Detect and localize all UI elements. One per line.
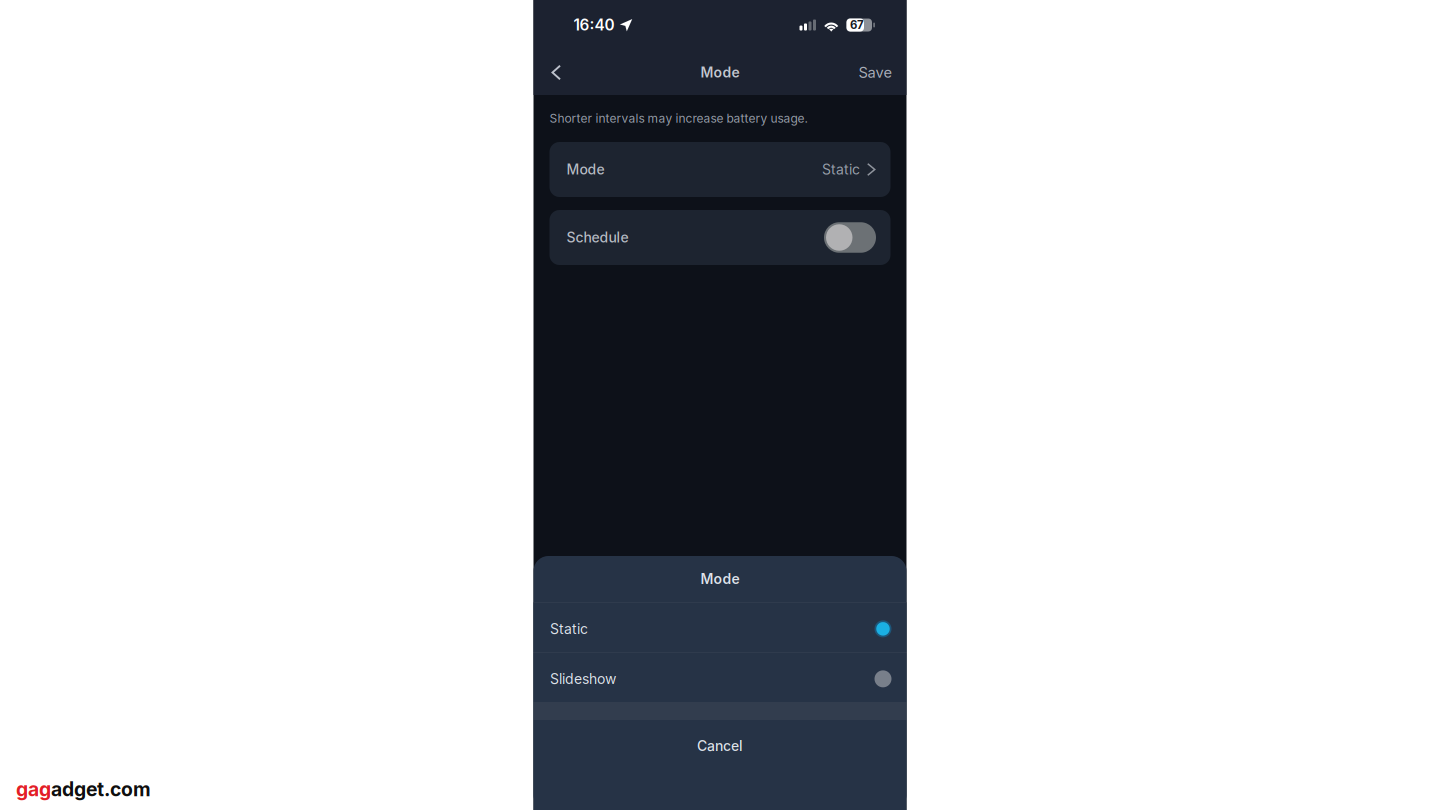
staticText: Mode xyxy=(566,161,604,178)
button[interactable]: Cancel xyxy=(533,720,906,810)
button[interactable]: Save xyxy=(840,50,906,95)
button[interactable]: Slideshow xyxy=(533,653,906,702)
staticText: Static xyxy=(822,161,860,178)
staticText: Mode xyxy=(700,64,739,81)
button[interactable]: Back xyxy=(533,50,577,95)
staticText: Shorter intervals may increase battery u… xyxy=(549,111,807,126)
staticText: Schedule xyxy=(566,229,628,246)
button[interactable]: Mode xyxy=(549,142,890,197)
staticText: 67 xyxy=(850,18,864,32)
staticText: Mode xyxy=(700,570,739,587)
staticText: Cancel xyxy=(697,737,743,754)
staticText: Slideshow xyxy=(550,670,616,687)
staticText: adget.com xyxy=(51,778,151,801)
button[interactable]: Schedule xyxy=(549,210,890,265)
staticText: Save xyxy=(858,64,892,81)
button[interactable]: Static xyxy=(533,603,906,652)
staticText: Static xyxy=(550,620,588,637)
staticText: gag xyxy=(16,778,51,801)
staticText: 16:40 xyxy=(573,16,614,34)
